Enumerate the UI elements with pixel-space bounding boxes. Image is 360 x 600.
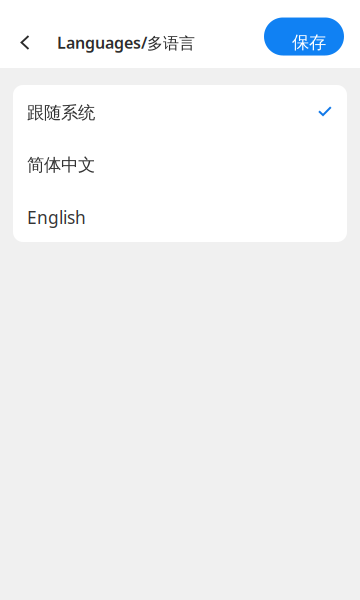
button[interactable]: 保存 [264, 17, 344, 55]
button[interactable]: 跟随系统 [13, 85, 347, 137]
staticText: 跟随系统 [27, 102, 95, 123]
staticText: Languages/多语言 [57, 32, 195, 53]
button[interactable]: English [13, 190, 347, 242]
staticText: 保存 [292, 32, 326, 53]
staticText: English [27, 206, 86, 229]
button[interactable]: 简体中文 [13, 137, 347, 190]
staticText: 简体中文 [27, 154, 95, 176]
button[interactable]: Back [3, 20, 47, 64]
